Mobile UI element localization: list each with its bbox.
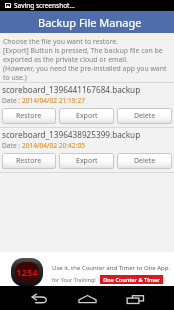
staticText: 2014/04/02 21:19:27 bbox=[22, 96, 85, 105]
staticText: Export bbox=[76, 156, 98, 166]
button[interactable]: Export bbox=[59, 108, 114, 124]
staticText: 2014/04/02 20:42:05 bbox=[22, 141, 85, 150]
staticText: for Your Training! bbox=[52, 276, 96, 283]
staticText: Backup File Manage bbox=[38, 15, 142, 30]
staticText: Use it, the Counter and Timer to One App… bbox=[52, 264, 171, 272]
staticText: Export bbox=[76, 111, 98, 121]
button[interactable]: Restore bbox=[2, 153, 56, 169]
staticText: Date : bbox=[2, 141, 22, 150]
staticText: scoreboard_1396441167684.backup bbox=[2, 84, 141, 95]
staticText: Saving screenshot... bbox=[14, 1, 75, 10]
button[interactable]: Restore bbox=[2, 108, 56, 124]
staticText: Delete bbox=[134, 111, 156, 121]
staticText: Restore bbox=[16, 111, 42, 121]
button[interactable]: Export bbox=[59, 153, 114, 169]
button[interactable]: One Counter & Timer bbox=[103, 275, 160, 284]
staticText: 1234 bbox=[16, 266, 38, 279]
button[interactable]: Recent apps bbox=[116, 286, 154, 310]
button[interactable]: scoreboard_1396438925399.backup bbox=[0, 127, 174, 172]
button[interactable]: Home bbox=[68, 286, 106, 310]
button[interactable]: Delete bbox=[117, 153, 172, 169]
staticText: One Counter & Timer bbox=[103, 276, 160, 283]
staticText: Restore bbox=[16, 156, 42, 166]
staticText: Date : bbox=[2, 96, 22, 105]
button[interactable]: Back bbox=[20, 286, 58, 310]
button[interactable]: Delete bbox=[117, 108, 172, 124]
staticText: Choose the file you want to restore. [Ex… bbox=[3, 37, 167, 82]
staticText: Delete bbox=[134, 156, 156, 166]
button[interactable]: scoreboard_1396441167684.backup bbox=[0, 82, 174, 127]
staticText: scoreboard_1396438925399.backup bbox=[2, 129, 141, 140]
button[interactable]: 1234 bbox=[0, 252, 174, 286]
